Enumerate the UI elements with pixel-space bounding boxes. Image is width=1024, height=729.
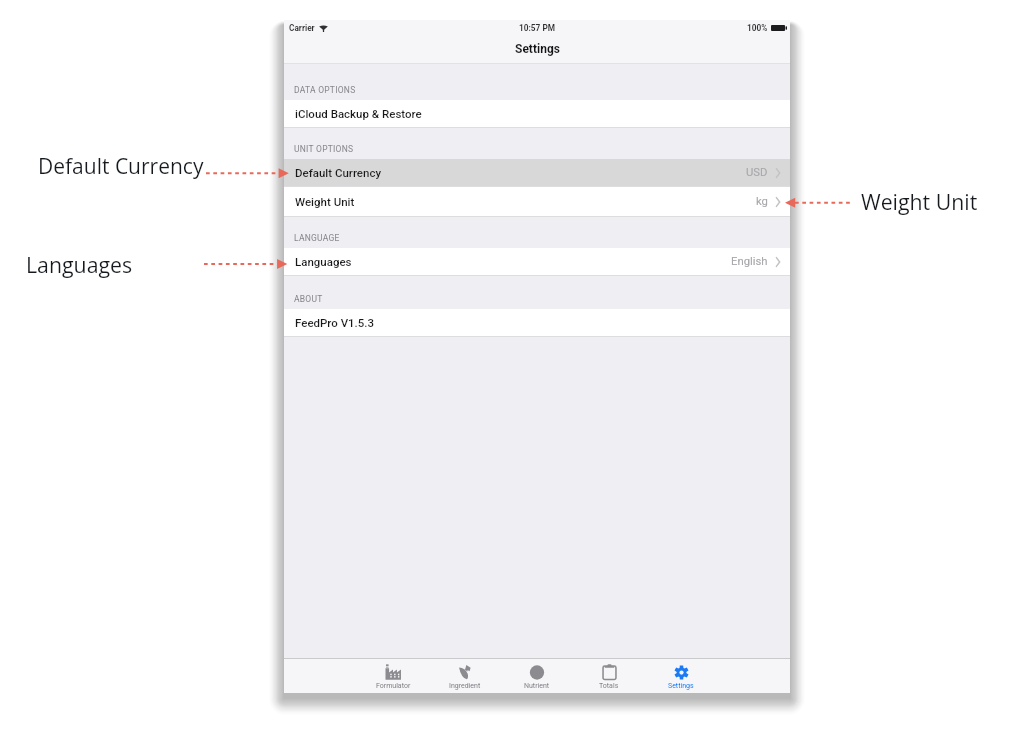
button[interactable]: Default Currency (284, 159, 790, 186)
staticText: USD (746, 166, 768, 179)
button[interactable]: Nutrient (501, 659, 573, 693)
staticText: LANGUAGE (294, 233, 340, 243)
staticText: 10:57 PM (519, 23, 556, 33)
button[interactable]: Ingredient (429, 659, 501, 693)
staticText: Settings (668, 682, 694, 690)
staticText: Weight Unit (861, 187, 978, 216)
button[interactable]: Formulator (357, 659, 429, 693)
staticText: Ingredient (449, 682, 481, 690)
staticText: UNIT OPTIONS (294, 144, 354, 154)
staticText: Settings (515, 42, 560, 56)
staticText: FeedPro V1.5.3 (295, 316, 375, 329)
staticText: English (731, 255, 768, 268)
staticText: Formulator (376, 682, 411, 690)
button[interactable]: Totals (573, 659, 645, 693)
staticText: Nutrient (524, 682, 550, 690)
staticText: ABOUT (294, 294, 323, 304)
staticText: Default Currency (295, 166, 382, 179)
button[interactable]: Languages (284, 248, 790, 275)
staticText: Default Currency (38, 152, 204, 181)
button[interactable]: Settings (645, 659, 717, 693)
staticText: DATA OPTIONS (294, 85, 356, 95)
staticText: kg (756, 195, 768, 208)
staticText: Weight Unit (295, 195, 355, 208)
button[interactable]: iCloud Backup & Restore (284, 100, 790, 127)
staticText: iCloud Backup & Restore (295, 107, 422, 120)
staticText: Languages (295, 255, 352, 268)
staticText: Languages (26, 250, 133, 279)
staticText: 100% (747, 23, 768, 33)
staticText: Totals (599, 682, 619, 690)
button[interactable]: FeedPro V1.5.3 (284, 309, 790, 336)
staticText: Carrier (289, 23, 315, 33)
button[interactable]: Weight Unit (284, 187, 790, 216)
